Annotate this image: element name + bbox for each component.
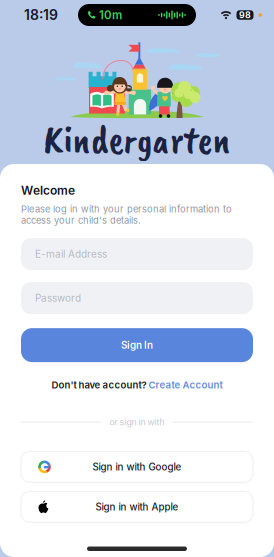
staticText: E-mail Address — [35, 248, 107, 260]
staticText: Don't have account? — [51, 379, 148, 391]
staticText: 98 — [239, 10, 251, 20]
button[interactable]: Sign in with Apple — [21, 491, 253, 522]
staticText: 10m — [99, 8, 122, 22]
staticText: Welcome — [21, 183, 75, 197]
button[interactable]: Sign in with Google — [21, 451, 253, 482]
button[interactable]: Create Account — [148, 379, 222, 391]
staticText: 18:19 — [24, 6, 58, 23]
staticText: or sign in with — [109, 417, 164, 427]
staticText: Please log in with your personal informa… — [21, 203, 232, 226]
staticText: Password — [35, 292, 81, 304]
staticText: Sign in with Google — [92, 461, 181, 473]
staticText: Sign in with Apple — [95, 501, 178, 513]
staticText: Sign In — [121, 339, 153, 351]
staticText: Kindergarten — [43, 114, 230, 164]
button[interactable]: Sign In — [21, 328, 253, 362]
staticText: Create Account — [148, 379, 222, 391]
